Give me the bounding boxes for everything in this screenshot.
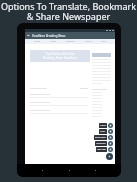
- button[interactable]: More options: [106, 153, 113, 160]
- button[interactable]: Share: [99, 123, 113, 128]
- button[interactable]: World: [50, 40, 57, 43]
- staticText: Translate: [96, 142, 106, 145]
- staticText: Copy: [100, 130, 106, 133]
- button[interactable]: Copy: [99, 129, 113, 134]
- button[interactable]: Business: [66, 40, 76, 43]
- button[interactable]: Back: [27, 34, 30, 37]
- button[interactable]: Tech: [101, 40, 106, 43]
- button[interactable]: Bookmark: [94, 135, 113, 140]
- button[interactable]: Translate: [95, 141, 113, 146]
- staticText: Share: [100, 124, 106, 127]
- button[interactable]: Sports: [85, 40, 92, 43]
- button[interactable]: Text Size: [96, 147, 113, 152]
- staticText: Text Size: [97, 148, 106, 151]
- button[interactable]: Home: [34, 40, 41, 43]
- staticText: Bookmark: [95, 136, 106, 139]
- staticText: Headlines Breaking News: [32, 34, 66, 38]
- staticText: Options To Translate, Bookmark & Share N…: [0, 0, 137, 23]
- staticText: Top Stories of the day Breaking News Hea…: [43, 52, 77, 60]
